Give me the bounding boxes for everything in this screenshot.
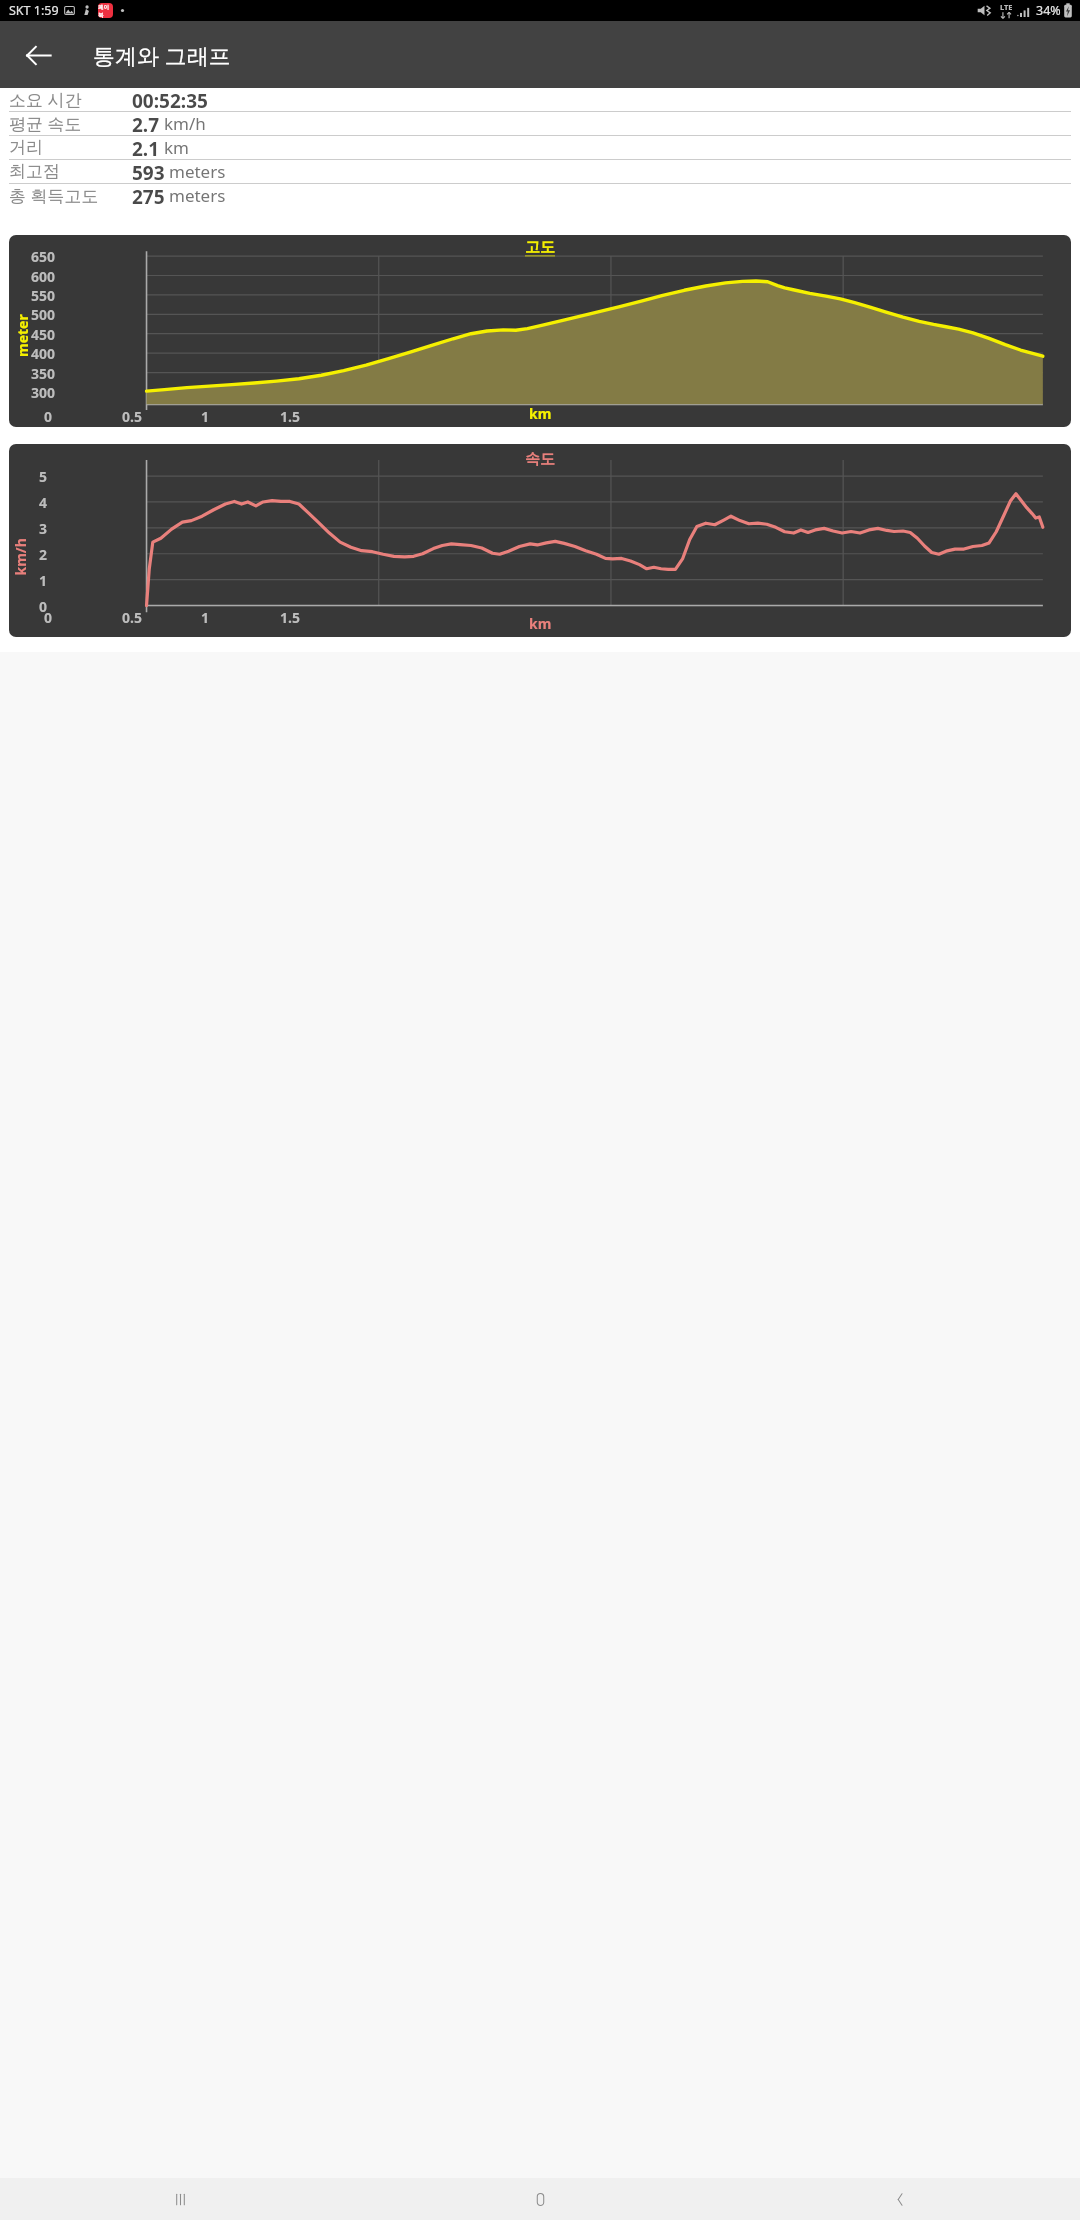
staticText: 400	[31, 344, 56, 363]
staticText: 5	[39, 467, 48, 486]
staticText: 1.5	[280, 407, 300, 426]
staticText: 2.7	[132, 112, 160, 135]
staticText: 통계와 그래프	[93, 40, 231, 70]
staticText: LTE	[1000, 2, 1013, 12]
staticText: 1.5	[280, 608, 300, 627]
button[interactable]: Recent apps	[0, 2178, 360, 2220]
staticText: 34%	[1036, 2, 1061, 19]
staticText: km	[529, 404, 552, 423]
staticText: 500	[31, 305, 56, 324]
staticText: 300	[31, 383, 56, 402]
button[interactable]: Home	[360, 2178, 720, 2220]
button[interactable]: Back	[10, 27, 66, 83]
staticText: km	[529, 614, 552, 633]
staticText: 소요 시간	[9, 88, 82, 111]
button[interactable]: 소요 시간	[0, 88, 1080, 111]
staticText: 페이북	[98, 4, 113, 18]
staticText: 350	[31, 364, 56, 383]
button[interactable]: 0	[9, 444, 1071, 637]
staticText: meters	[169, 160, 226, 183]
staticText: 1	[201, 407, 210, 426]
staticText: 0	[44, 407, 53, 426]
staticText: 00:52:35	[132, 88, 208, 111]
button[interactable]: 총 획득고도	[0, 184, 1080, 207]
staticText: 속도	[525, 450, 555, 469]
staticText: 0	[39, 597, 48, 616]
staticText: 0.5	[122, 407, 142, 426]
staticText: 550	[31, 286, 56, 305]
staticText: 고도	[525, 238, 555, 257]
staticText: 650	[31, 247, 56, 266]
staticText: 총 획득고도	[9, 184, 99, 207]
staticText: km/h	[164, 112, 206, 135]
staticText: km/h	[10, 537, 29, 575]
staticText: km	[164, 136, 189, 159]
staticText: meter	[13, 314, 32, 357]
staticText: 275	[132, 184, 165, 207]
staticText: 450	[31, 325, 56, 344]
button[interactable]: 650	[9, 235, 1071, 427]
staticText: 2	[39, 545, 48, 564]
staticText: 2.1	[132, 136, 160, 159]
staticText: meters	[169, 184, 226, 207]
staticText: 최고점	[9, 161, 60, 182]
staticText: 1	[39, 571, 48, 590]
staticText: 평균 속도	[9, 112, 82, 135]
staticText: 거리	[9, 137, 43, 158]
staticText: 4	[39, 493, 48, 512]
staticText: 3	[39, 519, 48, 538]
staticText: 0.5	[122, 608, 142, 627]
button[interactable]: 평균 속도	[0, 112, 1080, 135]
staticText: 0	[44, 608, 53, 627]
staticText: 593	[132, 160, 165, 183]
staticText: SKT 1:59	[9, 2, 59, 19]
button[interactable]: 최고점	[0, 160, 1080, 183]
button[interactable]: 거리	[0, 136, 1080, 159]
staticText: 600	[31, 267, 56, 286]
staticText: 1	[201, 608, 210, 627]
